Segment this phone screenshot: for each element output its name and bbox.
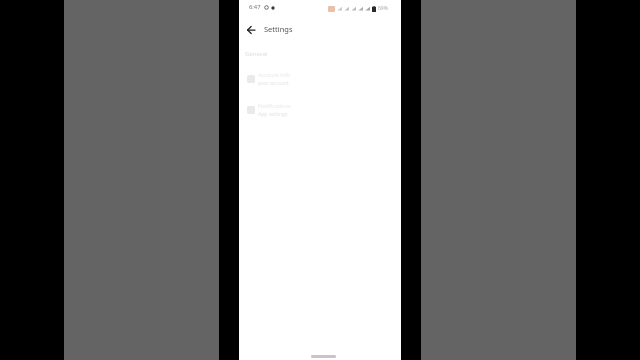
button[interactable]: Account info [239,68,401,90]
button[interactable]: Notifications [239,99,401,121]
staticText: 69% [378,5,388,12]
staticText: General [245,50,268,58]
staticText: Notifications [258,102,291,109]
staticText: Settings [264,24,293,34]
button[interactable]: Back [243,21,259,37]
staticText: Account info [258,71,291,78]
staticText: your account [258,80,289,87]
staticText: 6:47 [249,3,261,11]
staticText: App settings [258,111,288,118]
